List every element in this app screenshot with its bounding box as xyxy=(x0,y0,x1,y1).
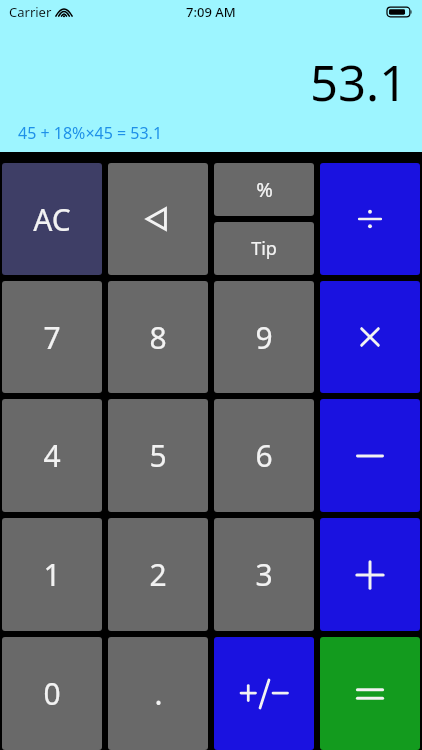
button[interactable]: Toggle sign xyxy=(214,637,314,750)
button[interactable]: 3 xyxy=(214,518,314,631)
button[interactable]: Subtract xyxy=(320,399,420,512)
staticText: 4 xyxy=(43,435,61,476)
button[interactable]: 7 xyxy=(2,281,102,393)
button[interactable]: 5 xyxy=(108,399,208,512)
staticText: 5 xyxy=(149,435,167,476)
staticText: 7:09 AM xyxy=(186,3,236,21)
button[interactable]: Equals xyxy=(320,637,420,750)
button[interactable]: 0 xyxy=(2,637,102,750)
staticText: 2 xyxy=(149,554,167,595)
button[interactable]: Add xyxy=(320,518,420,631)
button[interactable]: 9 xyxy=(214,281,314,393)
staticText: % xyxy=(256,176,273,203)
staticText: 3 xyxy=(255,554,273,595)
staticText: 8 xyxy=(149,317,167,358)
button[interactable]: Tip xyxy=(214,222,314,275)
staticText: Tip xyxy=(251,236,277,261)
button[interactable]: Backspace xyxy=(108,163,208,275)
staticText: 53.1 xyxy=(310,49,408,116)
staticText: Carrier xyxy=(9,3,52,21)
button[interactable]: 6 xyxy=(214,399,314,512)
button[interactable]: % xyxy=(214,163,314,216)
staticText: AC xyxy=(33,199,71,240)
staticText: 0 xyxy=(43,673,61,714)
staticText: 6 xyxy=(255,435,273,476)
button[interactable]: . xyxy=(108,637,208,750)
button[interactable]: AC xyxy=(2,163,102,275)
button[interactable]: 2 xyxy=(108,518,208,631)
button[interactable]: Divide xyxy=(320,163,420,275)
staticText: 1 xyxy=(43,554,61,595)
button[interactable]: 1 xyxy=(2,518,102,631)
staticText: 45 + 18%×45 = 53.1 xyxy=(18,122,163,144)
staticText: 7 xyxy=(43,317,61,358)
button[interactable]: 8 xyxy=(108,281,208,393)
button[interactable]: Multiply xyxy=(320,281,420,393)
staticText: . xyxy=(154,673,163,714)
staticText: 9 xyxy=(255,317,273,358)
button[interactable]: 4 xyxy=(2,399,102,512)
